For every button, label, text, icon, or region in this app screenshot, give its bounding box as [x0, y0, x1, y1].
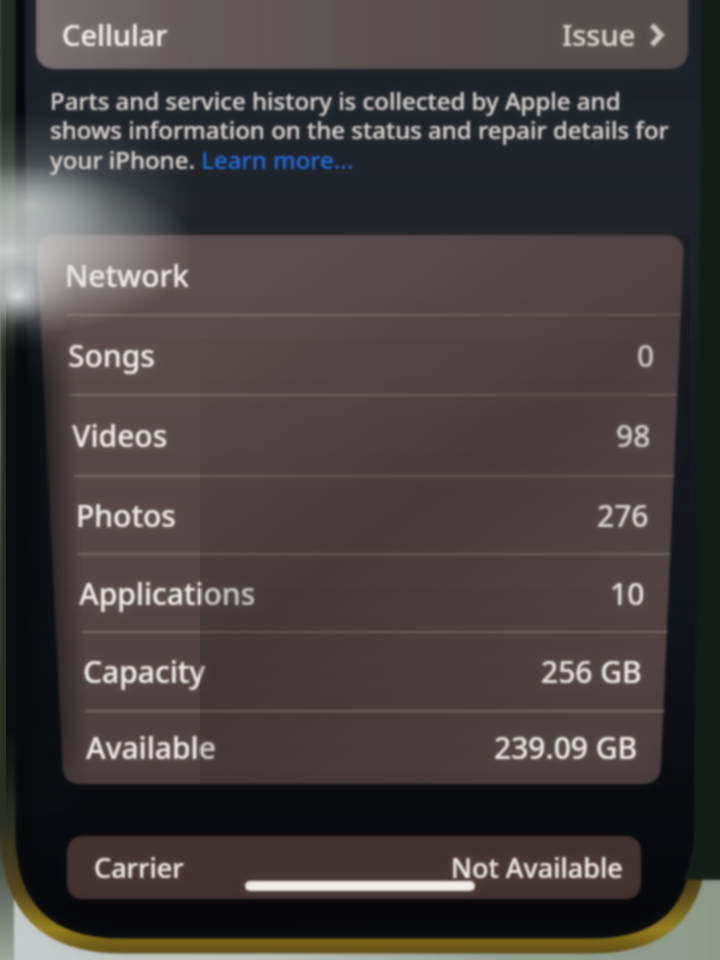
staticText: Parts and service history is collected b… [50, 84, 669, 176]
staticText: Cellular [62, 15, 168, 54]
staticText: Available [86, 727, 216, 768]
button[interactable]: Videos [46, 395, 675, 476]
button[interactable]: Applications [53, 554, 669, 632]
button[interactable]: Cellular [36, 0, 688, 69]
staticText: Songs [68, 335, 155, 376]
staticText: 10 [610, 573, 645, 614]
staticText: Capacity [83, 651, 206, 692]
other: Home indicator [245, 881, 475, 891]
staticText: 256 GB [541, 651, 642, 692]
staticText: 98 [616, 415, 651, 456]
staticText: Photos [76, 495, 176, 536]
button[interactable]: Network [39, 235, 683, 315]
staticText: Network [65, 255, 189, 296]
staticText: Network [65, 255, 189, 296]
button[interactable]: Network [39, 235, 683, 315]
staticText: Carrier [94, 849, 184, 886]
staticText: Photos [76, 495, 176, 536]
button[interactable]: Photos [50, 476, 673, 554]
button[interactable]: Applications [53, 554, 669, 632]
staticText: Available [86, 727, 216, 768]
staticText: 0 [637, 335, 655, 376]
staticText: Carrier [94, 849, 184, 886]
staticText: Parts and service history is collected b… [50, 84, 669, 176]
staticText: Not Available [451, 849, 623, 886]
staticText: 239.09 GB [494, 727, 638, 768]
button[interactable]: Available [60, 711, 662, 784]
staticText: Capacity [83, 651, 206, 692]
button[interactable]: Carrier [67, 836, 641, 899]
staticText: 256 GB [541, 651, 642, 692]
staticText: 239.09 GB [494, 727, 638, 768]
button[interactable]: Available [60, 711, 662, 784]
button[interactable]: Cellular [36, 0, 688, 69]
staticText: 98 [616, 415, 651, 456]
staticText: 0 [637, 335, 655, 376]
staticText: Songs [68, 335, 155, 376]
staticText: Applications [79, 573, 256, 614]
staticText: Videos [72, 415, 168, 456]
staticText: 10 [610, 573, 645, 614]
button[interactable]: Songs [42, 315, 679, 395]
staticText: Issue [562, 15, 636, 54]
other: Home indicator [245, 881, 475, 891]
staticText: Cellular [62, 15, 168, 54]
staticText: Applications [79, 573, 256, 614]
staticText: Issue [562, 15, 636, 54]
button[interactable]: Capacity [57, 632, 666, 711]
button[interactable]: Songs [42, 315, 679, 395]
staticText: Not Available [451, 849, 623, 886]
staticText: 276 [597, 495, 649, 536]
button[interactable]: Carrier [67, 836, 641, 899]
button[interactable]: Photos [50, 476, 673, 554]
staticText: Videos [72, 415, 168, 456]
button[interactable]: Capacity [57, 632, 666, 711]
staticText: 276 [597, 495, 649, 536]
button[interactable]: Videos [46, 395, 675, 476]
